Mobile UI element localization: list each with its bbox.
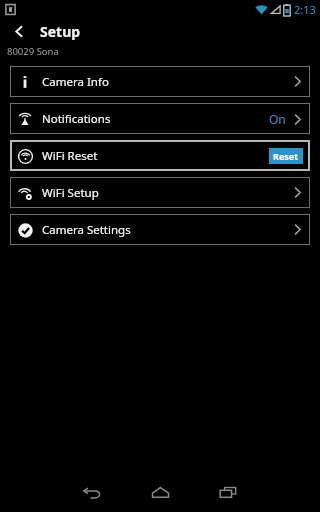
- staticText: Camera Settings: [42, 222, 131, 238]
- button[interactable]: Camera Settings: [10, 214, 310, 245]
- staticText: WiFi Reset: [42, 148, 98, 164]
- button[interactable]: Home: [132, 472, 188, 512]
- button[interactable]: Back: [6, 18, 32, 44]
- button[interactable]: WiFi Setup: [10, 177, 310, 208]
- staticText: Notifications: [42, 111, 111, 127]
- button[interactable]: Notifications: [10, 103, 310, 134]
- staticText: On: [269, 111, 286, 127]
- staticText: 80029 Sona: [7, 45, 59, 58]
- staticText: Setup: [40, 22, 81, 41]
- button[interactable]: WiFi Reset: [10, 140, 310, 171]
- button[interactable]: Recent apps: [200, 472, 256, 512]
- button[interactable]: Camera Info: [10, 66, 310, 97]
- button[interactable]: Reset: [269, 148, 303, 164]
- staticText: WiFi Setup: [42, 185, 99, 201]
- staticText: Camera Info: [42, 74, 109, 90]
- staticText: 2:13: [294, 2, 316, 17]
- button[interactable]: Back: [64, 472, 120, 512]
- staticText: Reset: [273, 150, 299, 162]
